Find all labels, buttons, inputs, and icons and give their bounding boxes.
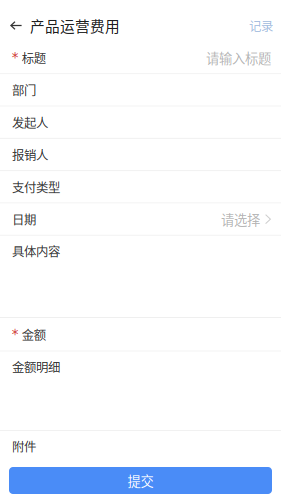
- staticText: 请选择: [221, 209, 260, 229]
- staticText: 标题: [22, 49, 46, 67]
- staticText: 支付类型: [12, 178, 60, 196]
- staticText: 发起人: [12, 113, 48, 131]
- staticText: 金额明细: [12, 358, 60, 376]
- button[interactable]: 具体内容: [0, 236, 281, 317]
- staticText: 金额: [22, 325, 46, 343]
- button[interactable]: 日期: [0, 203, 281, 235]
- staticText: 部门: [12, 81, 36, 99]
- button[interactable]: 附件: [0, 431, 281, 461]
- staticText: 提交: [127, 471, 153, 490]
- staticText: 记录: [249, 16, 273, 34]
- staticText: 产品运营费用: [30, 15, 120, 36]
- button[interactable]: 支付类型: [0, 171, 281, 202]
- button[interactable]: Back: [0, 9, 30, 42]
- staticText: 日期: [12, 210, 36, 228]
- button[interactable]: 金额明细: [0, 352, 281, 430]
- button[interactable]: 记录: [239, 9, 281, 42]
- staticText: 具体内容: [12, 242, 60, 260]
- staticText: *: [12, 326, 19, 342]
- button[interactable]: *: [0, 42, 281, 73]
- button[interactable]: 报销人: [0, 139, 281, 170]
- staticText: 报销人: [12, 146, 48, 164]
- button[interactable]: 部门: [0, 74, 281, 106]
- button[interactable]: *: [0, 318, 281, 351]
- staticText: 附件: [12, 437, 36, 455]
- staticText: 请输入标题: [206, 48, 271, 67]
- button[interactable]: 发起人: [0, 107, 281, 138]
- button[interactable]: 提交: [9, 467, 272, 494]
- staticText: *: [12, 50, 19, 65]
